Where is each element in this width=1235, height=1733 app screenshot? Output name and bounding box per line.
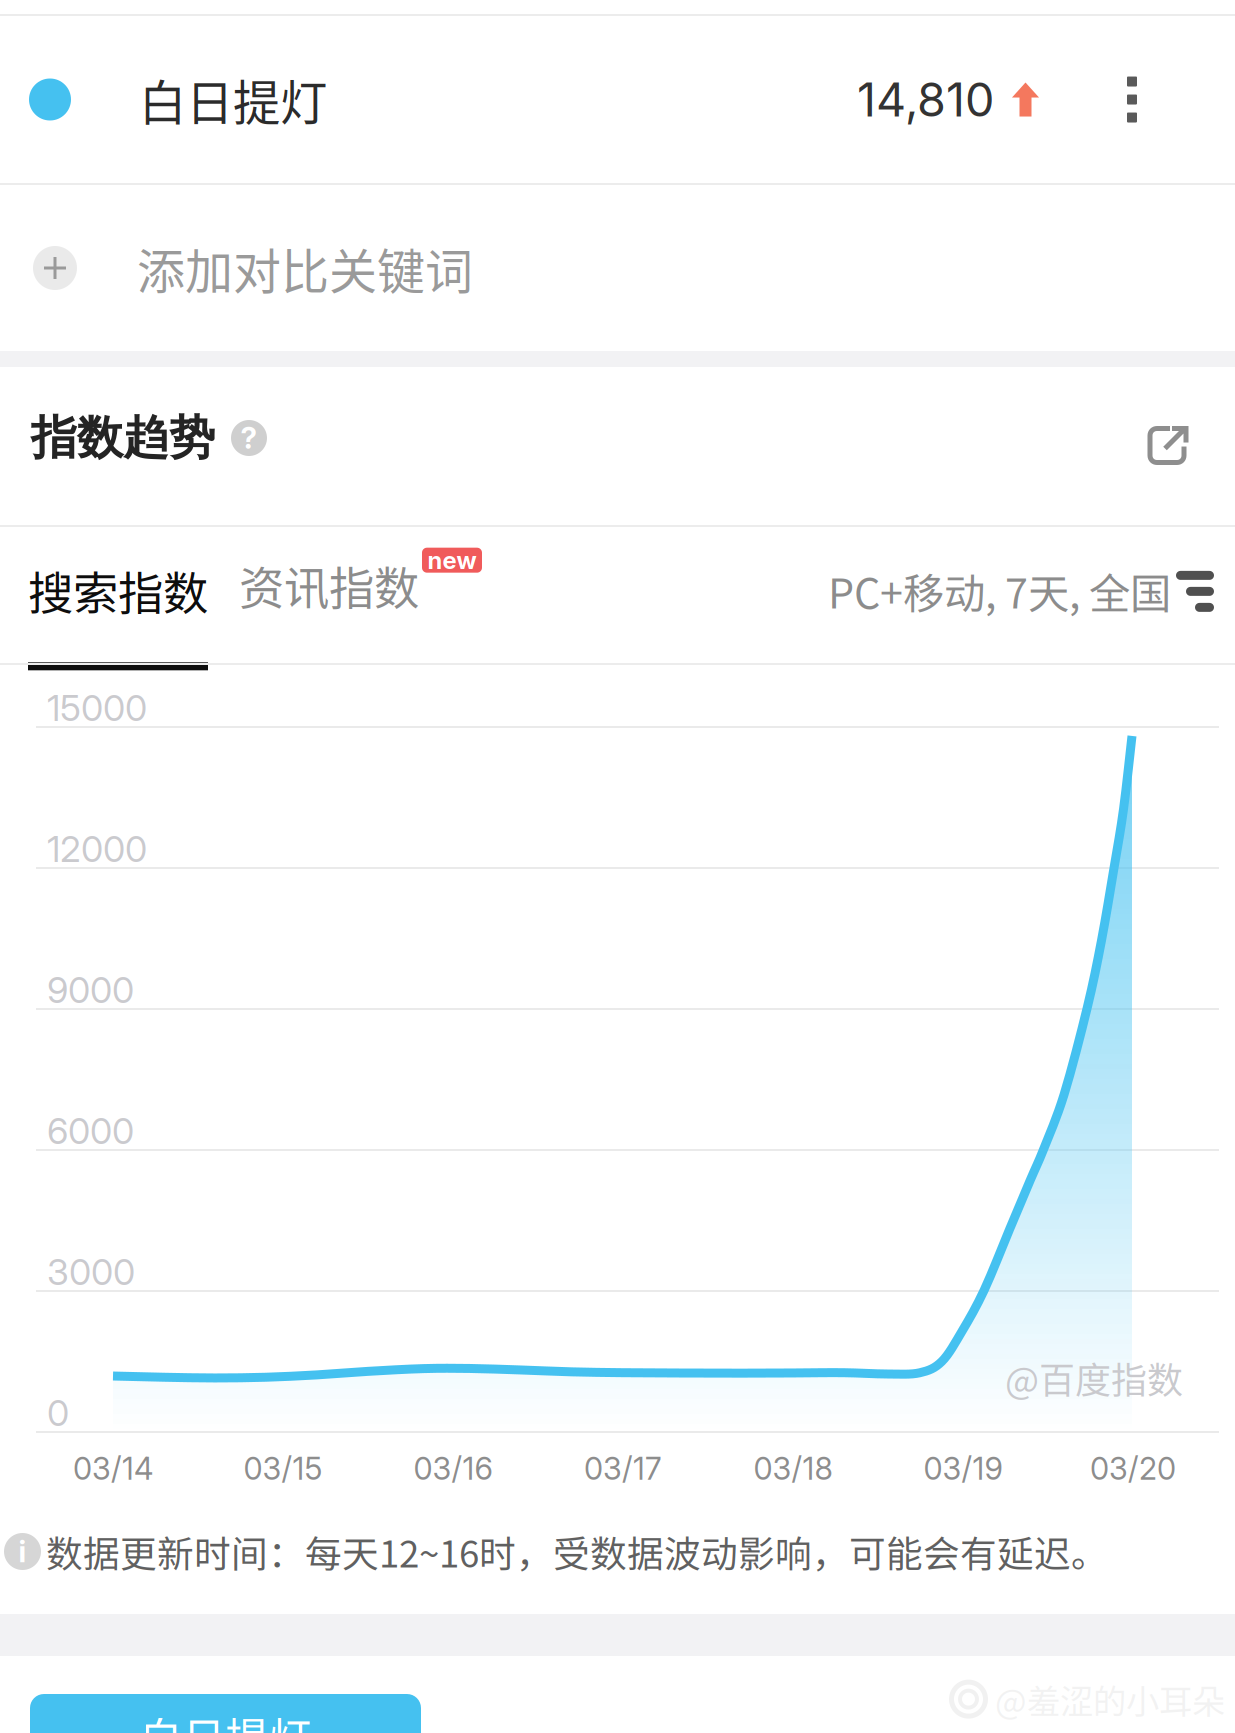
staticText: 0 — [47, 1391, 69, 1435]
staticText: 9000 — [47, 968, 134, 1012]
staticText: 资讯指数 — [239, 553, 419, 618]
staticText: 15000 — [47, 686, 147, 730]
button[interactable]: 白日提灯 — [0, 16, 1235, 183]
staticText: 14,810 — [857, 71, 994, 128]
staticText: 添加对比关键词 — [137, 233, 473, 303]
staticText: ? — [240, 420, 257, 456]
staticText: 03/18 — [753, 1450, 832, 1487]
button[interactable]: 白日提灯 — [30, 1694, 421, 1733]
staticText: @百度指数 — [1005, 1352, 1183, 1404]
staticText: 6000 — [47, 1109, 134, 1153]
staticText: 白日提灯 — [139, 1705, 311, 1733]
button[interactable]: PC+移动, 7天, 全国 — [828, 566, 1214, 670]
staticText: new — [427, 546, 476, 575]
button[interactable]: 添加对比关键词 — [0, 185, 1235, 351]
button[interactable]: Open in new window — [1147, 425, 1189, 466]
staticText: 指数趋势 — [31, 409, 215, 467]
staticText: 03/14 — [73, 1450, 153, 1487]
staticText: PC+移动, 7天, 全国 — [828, 560, 1171, 620]
staticText: 数据更新时间：每天12~16时，受数据波动影响，可能会有延迟。 — [46, 1525, 1108, 1578]
staticText: 03/16 — [413, 1450, 492, 1487]
staticText: 03/17 — [584, 1450, 662, 1487]
button[interactable]: 资讯指数 — [239, 537, 419, 670]
staticText: 03/19 — [923, 1450, 1002, 1487]
staticText: 3000 — [47, 1250, 135, 1294]
staticText: 03/15 — [243, 1450, 322, 1487]
staticText: @羞涩的小耳朵 — [995, 1675, 1225, 1723]
button[interactable]: 搜索指数 — [28, 520, 208, 662]
staticText: 12000 — [47, 827, 147, 871]
staticText: 白日提灯 — [139, 65, 327, 134]
staticText: 03/20 — [1090, 1450, 1176, 1487]
staticText: 搜索指数 — [28, 558, 208, 623]
staticText: i — [18, 1534, 26, 1569]
